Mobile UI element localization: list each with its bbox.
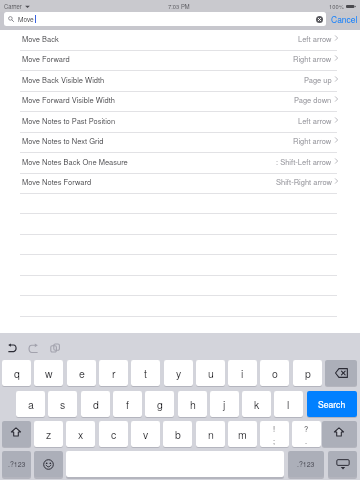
staticText: Move Back Visible Width	[22, 74, 105, 85]
staticText: m	[238, 427, 247, 442]
button[interactable]: x	[66, 421, 95, 447]
button[interactable]: z	[34, 421, 63, 447]
button[interactable]: .?123	[2, 451, 31, 477]
button[interactable]: Shift	[2, 421, 31, 447]
staticText: Move Forward Visible Width	[22, 94, 115, 105]
staticText: e	[79, 366, 85, 381]
staticText: 7:03 PM	[168, 2, 190, 10]
button[interactable]: Shift	[322, 421, 357, 447]
button[interactable]: j	[210, 391, 239, 417]
staticText: f	[126, 397, 129, 412]
button[interactable]: v	[131, 421, 160, 447]
staticText: Move Back	[22, 33, 59, 44]
button[interactable]: .?123	[288, 451, 324, 477]
button[interactable]: l	[274, 391, 303, 417]
staticText: Move Notes Back One Measure	[22, 156, 128, 167]
staticText: j	[223, 397, 226, 412]
staticText: Move Forward	[22, 53, 70, 64]
button[interactable]: Undo	[8, 343, 17, 352]
button[interactable]: Backspace	[325, 360, 357, 386]
staticText: k	[254, 397, 260, 412]
staticText: n	[208, 427, 214, 442]
button[interactable]: w	[34, 360, 63, 386]
staticText: c	[111, 427, 117, 442]
button[interactable]: n	[196, 421, 225, 447]
button[interactable]: Cancel	[331, 12, 358, 26]
staticText: Page down	[294, 94, 332, 105]
staticText: r	[112, 366, 116, 381]
button[interactable]: f	[113, 391, 142, 417]
button[interactable]: g	[145, 391, 174, 417]
staticText: .?123	[297, 459, 315, 469]
button[interactable]: i	[228, 360, 257, 386]
staticText: .	[305, 435, 308, 446]
button[interactable]: !	[260, 421, 289, 447]
staticText: Search	[318, 398, 346, 410]
staticText: x	[78, 427, 84, 442]
button[interactable]: a	[16, 391, 45, 417]
button[interactable]: Emoji keyboard	[34, 451, 63, 477]
staticText: ;	[273, 435, 276, 446]
button[interactable]: p	[293, 360, 322, 386]
staticText: s	[60, 397, 66, 412]
button[interactable]: Move Forward Visible Width	[0, 91, 360, 111]
button[interactable]: u	[196, 360, 225, 386]
staticText: !	[273, 423, 276, 434]
staticText: Move Notes to Next Grid	[22, 135, 104, 146]
staticText: Right arrow	[293, 135, 332, 146]
button[interactable]: k	[242, 391, 271, 417]
button[interactable]: Move Back	[0, 30, 360, 50]
button[interactable]: c	[99, 421, 128, 447]
staticText: h	[190, 397, 196, 412]
button[interactable]: q	[2, 360, 31, 386]
button[interactable]: Clear text	[315, 15, 324, 24]
button[interactable]: h	[178, 391, 207, 417]
staticText: 100%	[329, 2, 344, 10]
staticText: Left arrow	[298, 33, 332, 44]
staticText: u	[208, 366, 214, 381]
button[interactable]: t	[131, 360, 160, 386]
staticText: t	[144, 366, 147, 381]
button[interactable]: b	[163, 421, 192, 447]
staticText: Page up	[304, 74, 332, 85]
button[interactable]: Move Notes Forward	[0, 173, 360, 193]
button[interactable]: Paste	[50, 343, 60, 353]
staticText: Left arrow	[298, 115, 332, 126]
button[interactable]: Hide keyboard	[328, 451, 357, 477]
button[interactable]: Move Notes to Next Grid	[0, 132, 360, 152]
staticText: l	[287, 397, 290, 412]
staticText: g	[157, 397, 163, 412]
staticText: i	[241, 366, 244, 381]
staticText: Move Notes to Past Position	[22, 115, 116, 126]
button[interactable]: d	[81, 391, 110, 417]
button[interactable]: y	[164, 360, 193, 386]
button[interactable]: Move	[4, 12, 326, 26]
button[interactable]: o	[260, 360, 289, 386]
button[interactable]: Move Notes Back One Measure	[0, 153, 360, 173]
staticText: p	[305, 366, 311, 381]
button[interactable]: r	[99, 360, 128, 386]
button[interactable]: e	[67, 360, 96, 386]
button[interactable]: s	[48, 391, 77, 417]
button[interactable]: ?	[292, 421, 321, 447]
staticText: o	[272, 366, 278, 381]
staticText: ?	[304, 423, 309, 434]
button[interactable]: Redo	[28, 343, 38, 353]
staticText: y	[176, 366, 182, 381]
staticText: Shift-Right arrow	[276, 176, 332, 187]
button[interactable]: Move Forward	[0, 50, 360, 70]
staticText: q	[14, 366, 20, 381]
button[interactable]: Move Notes to Past Position	[0, 112, 360, 132]
staticText: Right arrow	[293, 53, 332, 64]
button[interactable]: Move Back Visible Width	[0, 71, 360, 91]
staticText: Move Notes Forward	[22, 176, 92, 187]
staticText: b	[175, 427, 181, 442]
staticText: a	[28, 397, 34, 412]
staticText: w	[45, 366, 53, 381]
staticText: .?123	[8, 459, 26, 469]
staticText: z	[46, 427, 52, 442]
button[interactable]: Search	[307, 391, 357, 417]
staticText: v	[143, 427, 149, 442]
button[interactable]: m	[228, 421, 257, 447]
